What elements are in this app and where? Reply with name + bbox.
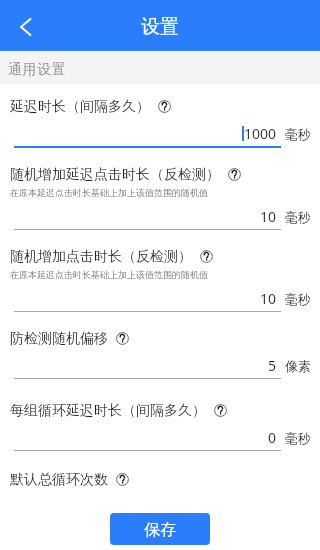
button[interactable]: 10 — [14, 289, 281, 308]
staticText: 5 — [268, 356, 277, 375]
button[interactable]: 防检测随机偏移 — [10, 329, 320, 347]
staticText: 10 — [260, 289, 277, 308]
button[interactable]: 随机增加点击时长（反检测） — [10, 247, 320, 265]
staticText: 1000 — [244, 124, 277, 143]
button[interactable]: 保存 — [110, 513, 210, 545]
staticText: 在原本延迟点击时长基础上加上该值范围的随机值 — [10, 269, 208, 280]
button[interactable]: 0 — [14, 428, 281, 447]
staticText: 默认总循环次数 — [10, 471, 108, 489]
staticText: 毫秒 — [285, 126, 311, 142]
staticText: 像素 — [285, 358, 311, 374]
staticText: 延迟时长（间隔多久） — [10, 98, 150, 116]
button[interactable]: 每组循环延迟时长（间隔多久） — [10, 401, 320, 419]
button[interactable]: 1000 — [14, 124, 281, 143]
staticText: 在原本延迟点击时长基础上加上该值范围的随机值 — [10, 187, 208, 198]
staticText: 0 — [268, 428, 277, 447]
button[interactable]: Help — [200, 250, 213, 263]
staticText: 防检测随机偏移 — [10, 330, 108, 348]
staticText: 设置 — [141, 15, 179, 39]
staticText: 毫秒 — [285, 209, 311, 225]
staticText: 10 — [260, 207, 277, 226]
button[interactable]: Help — [116, 332, 129, 345]
staticText: 每组循环延迟时长（间隔多久） — [10, 402, 206, 420]
staticText: 毫秒 — [285, 430, 311, 446]
button[interactable]: Help — [116, 473, 129, 486]
button[interactable]: 默认总循环次数 — [10, 470, 320, 488]
button[interactable]: Help — [214, 404, 227, 417]
button[interactable]: Help — [228, 168, 241, 181]
button[interactable]: 随机增加延迟点击时长（反检测） — [10, 165, 320, 183]
button[interactable]: Help — [158, 100, 171, 113]
staticText: 随机增加延迟点击时长（反检测） — [10, 166, 220, 184]
button[interactable]: 5 — [14, 356, 281, 375]
staticText: 保存 — [144, 520, 176, 540]
button[interactable]: 10 — [14, 207, 281, 226]
button[interactable]: Back — [5, 7, 45, 47]
button[interactable]: 延迟时长（间隔多久） — [10, 97, 320, 115]
staticText: 毫秒 — [285, 291, 311, 307]
staticText: 通用设置 — [8, 61, 67, 79]
staticText: 随机增加点击时长（反检测） — [10, 248, 192, 266]
